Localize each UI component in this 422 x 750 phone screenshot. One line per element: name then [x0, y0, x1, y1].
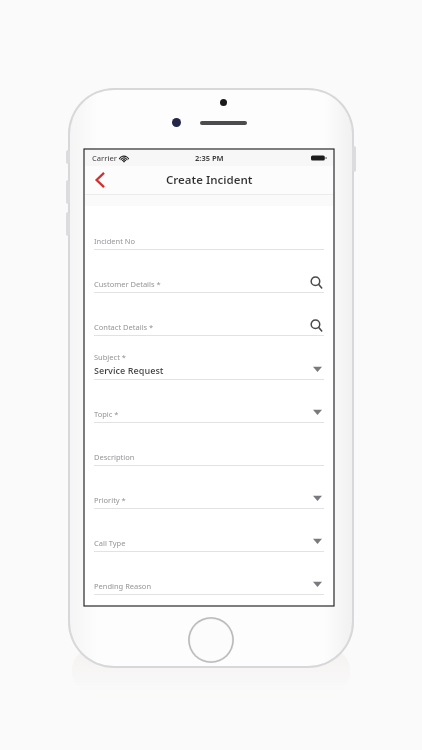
staticText: Contact Details * [94, 322, 154, 332]
staticText: Description [94, 452, 135, 462]
staticText: Priority * [94, 495, 126, 505]
staticText: Create Incident [166, 172, 253, 188]
button[interactable]: Search Contact Details * [308, 317, 324, 333]
button[interactable]: Subject * [85, 345, 333, 389]
button[interactable]: Pending Reason [85, 561, 333, 604]
button[interactable]: Customer Details * [85, 259, 333, 302]
button[interactable]: Open Topic * options [310, 406, 324, 418]
button[interactable]: Search Customer Details * [308, 274, 324, 290]
button[interactable]: Incident No [85, 206, 333, 259]
button[interactable]: Call Type [85, 518, 333, 561]
button[interactable]: Open Pending Reason options [310, 578, 324, 590]
button[interactable]: Topic * [85, 389, 333, 432]
button[interactable]: Description [85, 432, 333, 475]
button[interactable]: Open Subject * options [310, 363, 324, 375]
staticText: Topic * [94, 409, 119, 419]
staticText: Call Type [94, 538, 126, 548]
staticText: Carrier [92, 153, 117, 163]
staticText: Incident No [94, 236, 136, 246]
button[interactable]: Open Priority * options [310, 492, 324, 504]
button[interactable]: Back [85, 166, 115, 194]
button[interactable]: Priority * [85, 475, 333, 518]
staticText: Pending Reason [94, 581, 152, 591]
staticText: Customer Details * [94, 279, 161, 289]
button[interactable]: Open Call Type options [310, 535, 324, 547]
staticText: Subject * [94, 352, 126, 362]
staticText: 2:35 PM [195, 153, 224, 163]
button[interactable]: Contact Details * [85, 302, 333, 345]
staticText: Service Request [94, 364, 164, 376]
